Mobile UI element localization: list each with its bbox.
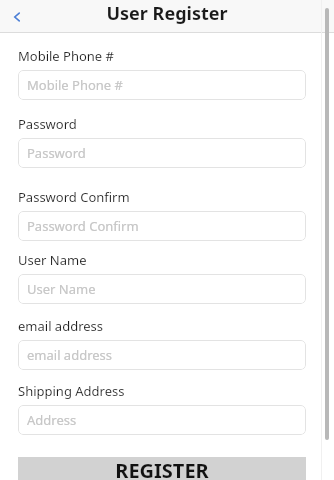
staticText: Password Confirm (27, 217, 139, 235)
staticText: Address (27, 411, 77, 429)
staticText: Mobile Phone # (18, 47, 114, 65)
button[interactable]: REGISTER (18, 457, 306, 480)
staticText: Shipping Address (18, 382, 125, 400)
button[interactable]: Back (0, 0, 34, 33)
button[interactable]: Password (18, 138, 306, 168)
staticText: User Name (27, 280, 96, 298)
button[interactable]: email address (18, 340, 306, 370)
staticText: User Register (106, 1, 228, 26)
staticText: REGISTER (115, 457, 209, 480)
staticText: email address (27, 346, 113, 364)
button[interactable]: Address (18, 405, 306, 435)
staticText: Mobile Phone # (27, 76, 123, 94)
staticText: Password (27, 144, 86, 162)
staticText: email address (18, 317, 104, 335)
staticText: Password Confirm (18, 188, 130, 206)
staticText: User Name (18, 251, 87, 269)
button[interactable]: Mobile Phone # (18, 70, 306, 100)
staticText: Password (18, 115, 77, 133)
button[interactable]: Password Confirm (18, 211, 306, 241)
button[interactable]: User Name (18, 274, 306, 304)
